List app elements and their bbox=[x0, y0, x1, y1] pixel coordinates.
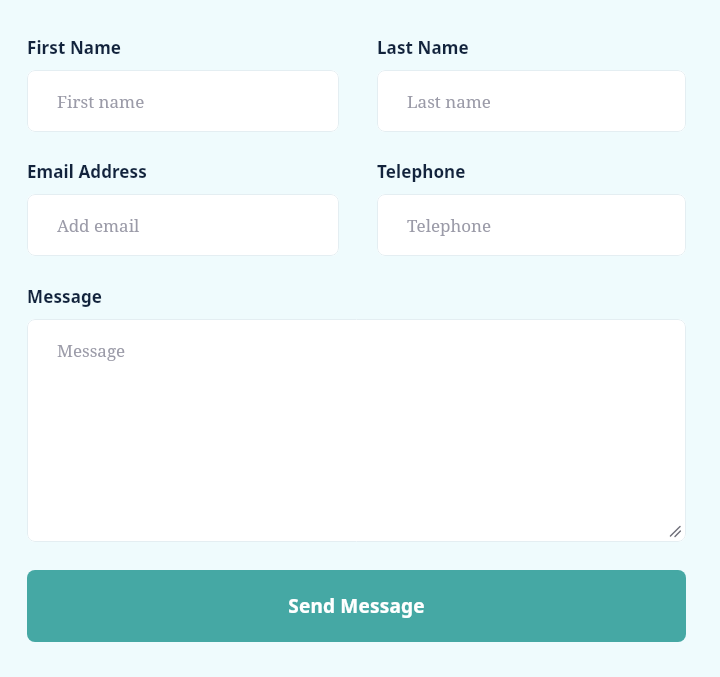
button[interactable]: Telephone bbox=[377, 194, 686, 256]
button[interactable]: Message bbox=[27, 319, 686, 542]
staticText: Last Name bbox=[377, 36, 469, 59]
button[interactable]: Last name bbox=[377, 70, 686, 132]
staticText: First name bbox=[57, 90, 145, 113]
button[interactable]: Add email bbox=[27, 194, 339, 256]
staticText: Message bbox=[57, 339, 126, 362]
staticText: Message bbox=[27, 285, 103, 308]
staticText: Last name bbox=[407, 90, 491, 113]
staticText: Email Address bbox=[27, 160, 147, 183]
staticText: Send Message bbox=[288, 593, 425, 619]
staticText: Telephone bbox=[407, 214, 492, 237]
staticText: Telephone bbox=[377, 160, 466, 183]
staticText: First Name bbox=[27, 36, 122, 59]
button[interactable]: Send Message bbox=[27, 570, 686, 642]
button[interactable]: First name bbox=[27, 70, 339, 132]
staticText: Add email bbox=[57, 214, 140, 237]
